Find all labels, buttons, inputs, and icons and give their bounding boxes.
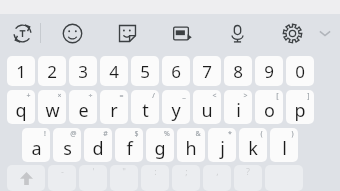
staticText: " [122, 165, 126, 177]
button[interactable]: < [193, 90, 221, 124]
staticText: ( [260, 129, 263, 139]
staticText: > [243, 91, 248, 101]
staticText: = [119, 91, 124, 101]
staticText: 6 [171, 60, 181, 83]
staticText: : [154, 165, 157, 177]
button[interactable]: Emoji [57, 18, 87, 48]
staticText: i [236, 98, 241, 123]
button[interactable]: 3 [69, 56, 97, 86]
staticText: 2 [47, 60, 57, 83]
staticText: p [294, 98, 306, 123]
button[interactable]: ÷ [69, 90, 97, 124]
staticText: o [264, 98, 275, 123]
staticText: , [216, 165, 219, 177]
staticText: _ [182, 91, 186, 101]
staticText: 5 [140, 60, 150, 83]
staticText: t [142, 98, 149, 123]
staticText: $ [134, 129, 139, 139]
staticText: q [15, 98, 27, 123]
staticText: + [26, 91, 31, 101]
staticText: f [126, 136, 133, 161]
staticText: # [103, 129, 108, 139]
staticText: × [57, 91, 62, 101]
staticText: @ [70, 129, 77, 139]
staticText: u [201, 98, 213, 123]
staticText: [ [276, 91, 279, 101]
button[interactable]: Translate [7, 18, 37, 48]
staticText: 0 [295, 60, 305, 83]
button[interactable]: 6 [162, 56, 190, 86]
button[interactable]: > [224, 90, 252, 124]
button[interactable]: × [38, 90, 66, 124]
button[interactable]: Voice input [222, 18, 252, 48]
staticText: l [282, 136, 287, 161]
button[interactable]: 0 [286, 56, 314, 86]
staticText: r [110, 98, 118, 123]
staticText: ; [185, 165, 188, 177]
staticText: g [154, 136, 166, 161]
staticText: % [164, 129, 170, 139]
button[interactable]: 2 [38, 56, 66, 86]
button[interactable]: Shift [7, 165, 45, 191]
staticText: 7 [202, 60, 212, 83]
button[interactable]: Stickers [112, 18, 142, 48]
button[interactable]: Hide keyboard [310, 18, 340, 48]
button[interactable]: & [177, 128, 205, 162]
staticText: & [195, 129, 201, 139]
button[interactable]: 8 [224, 56, 252, 86]
button[interactable]: [ [255, 90, 283, 124]
staticText: 4 [109, 60, 119, 83]
staticText: ÷ [88, 91, 93, 101]
staticText: a [31, 136, 42, 161]
staticText: k [248, 136, 258, 161]
button[interactable]: + [7, 90, 35, 124]
button[interactable]: * [208, 128, 236, 162]
button[interactable]: / [131, 90, 159, 124]
staticText: y [171, 98, 181, 123]
staticText: - [61, 165, 64, 177]
button[interactable]: ( [239, 128, 267, 162]
staticText: 9 [264, 60, 274, 83]
button[interactable]: # [84, 128, 112, 162]
staticText: ) [291, 129, 294, 139]
staticText: 3 [78, 60, 88, 83]
staticText: 1 [16, 60, 26, 83]
staticText: / [152, 91, 155, 101]
staticText: * [228, 129, 232, 139]
button[interactable]: ] [286, 90, 314, 124]
button[interactable]: 5 [131, 56, 159, 86]
button[interactable]: 9 [255, 56, 283, 86]
button[interactable]: 1 [7, 56, 35, 86]
staticText: ] [307, 91, 310, 101]
button[interactable]: $ [115, 128, 143, 162]
button[interactable]: @ [53, 128, 81, 162]
staticText: d [92, 136, 104, 161]
staticText: ' [92, 165, 95, 177]
button[interactable]: ) [270, 128, 298, 162]
staticText: ? [246, 165, 250, 177]
button[interactable]: Settings [277, 18, 307, 48]
staticText: ! [44, 129, 46, 139]
button[interactable]: 4 [100, 56, 128, 86]
staticText: s [63, 136, 72, 161]
staticText: j [220, 136, 225, 161]
button[interactable]: % [146, 128, 174, 162]
button[interactable]: 7 [193, 56, 221, 86]
staticText: h [185, 136, 197, 161]
staticText: 8 [233, 60, 243, 83]
staticText: < [212, 91, 217, 101]
button[interactable]: ! [22, 128, 50, 162]
button[interactable]: GIF [167, 18, 197, 48]
button[interactable]: _ [162, 90, 190, 124]
staticText: w [45, 98, 60, 123]
button[interactable]: = [100, 90, 128, 124]
staticText: e [78, 98, 89, 123]
